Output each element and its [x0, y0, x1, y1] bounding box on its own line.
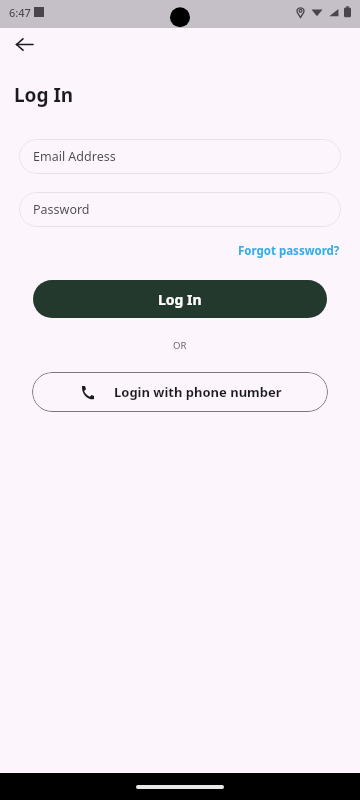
- staticText: OR: [173, 339, 187, 352]
- button[interactable]: Login with phone number: [32, 372, 328, 412]
- button[interactable]: Password: [19, 192, 341, 227]
- button[interactable]: Log In: [33, 280, 327, 318]
- staticText: Login with phone number: [114, 383, 282, 401]
- staticText: 6:47: [9, 5, 31, 20]
- staticText: Email Address: [33, 148, 116, 165]
- staticText: Log In: [158, 290, 202, 309]
- staticText: Forgot password?: [238, 243, 340, 259]
- staticText: Password: [33, 201, 90, 218]
- button[interactable]: Back: [8, 28, 40, 60]
- button[interactable]: Forgot password?: [236, 240, 342, 262]
- button[interactable]: Email Address: [19, 139, 341, 174]
- staticText: Log In: [14, 82, 74, 108]
